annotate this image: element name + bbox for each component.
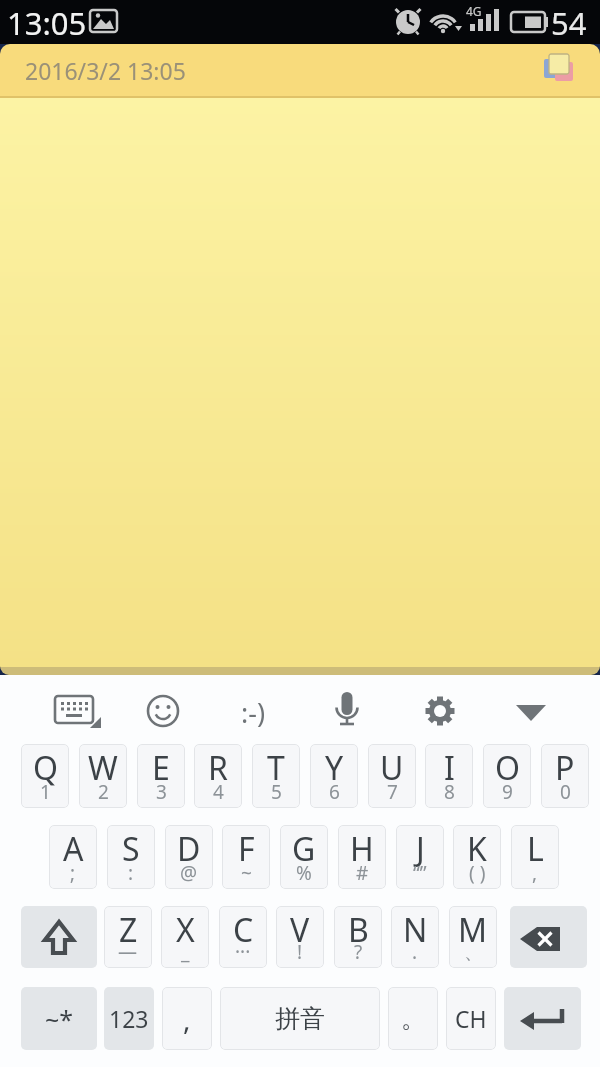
staticText: H [350,827,374,871]
staticText: D [177,827,201,871]
button[interactable] [510,906,587,968]
staticText: , [532,860,538,886]
button[interactable] [320,683,376,735]
button[interactable]: K [453,825,501,889]
button[interactable]: V [276,906,324,968]
staticText: O [495,746,520,790]
staticText: R [208,746,228,790]
staticText: 7 [387,779,398,805]
button[interactable]: ~* [21,987,97,1050]
button[interactable]: I [425,744,473,808]
staticText: 9 [502,779,513,805]
button[interactable]: E [137,744,185,808]
staticText: Z [119,908,138,952]
button[interactable]: , [162,987,212,1050]
button[interactable]: B [334,906,382,968]
button[interactable]: T [252,744,300,808]
staticText: T [267,746,285,790]
staticText: , [183,1000,191,1038]
staticText: ··· [235,939,251,965]
button[interactable] [228,683,284,735]
button[interactable]: S [107,825,155,889]
staticText: 123 [109,1003,149,1034]
staticText: V [290,908,310,952]
button[interactable]: M [449,906,497,968]
staticText: 2 [98,779,109,805]
staticText: W [88,746,118,790]
staticText: N [403,908,428,952]
button[interactable]: F [222,825,270,889]
staticText: P [555,746,575,790]
button[interactable] [412,683,468,735]
button[interactable]: Z [104,906,152,968]
button[interactable] [21,906,97,968]
button[interactable] [136,683,192,735]
button[interactable]: 2016/3/2 13:05 [0,44,600,96]
staticText: 拼音 [275,1003,325,1034]
button[interactable]: G [280,825,328,889]
button[interactable] [504,683,560,735]
staticText: 、 [464,941,483,965]
staticText: 5 [271,779,282,805]
staticText: F [238,827,255,871]
staticText: L [527,827,544,871]
button[interactable] [0,98,600,667]
staticText: B [348,908,369,952]
staticText: 13:05 [7,2,87,44]
staticText: Y [325,746,344,790]
button[interactable]: X [161,906,209,968]
staticText: ; [70,860,76,886]
button[interactable] [42,683,108,735]
button[interactable]: W [79,744,127,808]
button[interactable]: CH [446,987,496,1050]
staticText: A [63,827,84,871]
staticText: C [233,908,254,952]
button[interactable] [504,987,581,1050]
button[interactable]: H [338,825,386,889]
button[interactable]: N [391,906,439,968]
staticText: . [412,939,418,965]
staticText: 4G [466,3,482,19]
button[interactable]: 拼音 [220,987,380,1050]
button[interactable]: U [368,744,416,808]
staticText: K [467,827,487,871]
staticText: 4 [213,779,224,805]
staticText: @ [180,860,198,886]
button[interactable]: R [194,744,242,808]
button[interactable]: 123 [104,987,154,1050]
staticText: “” [413,860,427,886]
staticText: 3 [156,779,167,805]
button[interactable]: P [541,744,589,808]
button[interactable]: D [165,825,213,889]
staticText: _ [181,939,190,965]
staticText: ~ [241,860,252,886]
staticText: 1 [40,779,51,805]
button[interactable]: O [483,744,531,808]
staticText: 。 [401,1003,426,1034]
staticText: Q [33,746,58,790]
staticText: ! [297,939,303,965]
staticText: 2016/3/2 13:05 [25,55,186,86]
button[interactable]: A [49,825,97,889]
staticText: 8 [444,779,455,805]
staticText: :-) [241,694,266,731]
staticText: % [296,860,312,886]
button[interactable]: Q [21,744,69,808]
button[interactable]: Y [310,744,358,808]
staticText: 6 [329,779,340,805]
staticText: S [122,827,140,871]
staticText: ? [354,939,363,965]
button[interactable]: L [511,825,559,889]
staticText: E [152,746,170,790]
staticText: ( ) [469,860,486,886]
staticText: CH [455,1003,487,1034]
staticText: : [128,860,134,886]
staticText: G [292,827,316,871]
staticText: X [176,908,195,952]
button[interactable]: J [396,825,444,889]
staticText: 0 [560,779,571,805]
button[interactable]: 。 [388,987,438,1050]
button[interactable]: C [219,906,267,968]
staticText: J [416,827,425,871]
staticText: 54 [551,2,587,44]
